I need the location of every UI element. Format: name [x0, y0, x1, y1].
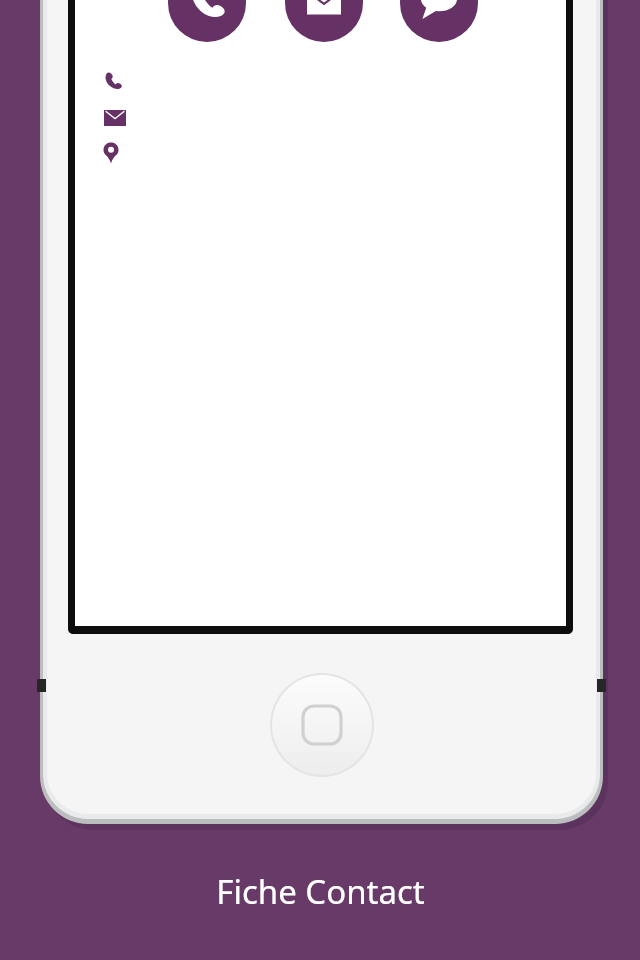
button[interactable]: Email address [100, 106, 130, 132]
button[interactable]: Message [400, 0, 478, 42]
button[interactable]: Email [285, 0, 363, 42]
button[interactable]: Home [272, 675, 372, 775]
button[interactable]: Call [168, 0, 246, 42]
button[interactable]: Address [99, 141, 125, 167]
button[interactable]: Phone number [100, 68, 128, 94]
staticText: Fiche Contact [216, 869, 425, 914]
